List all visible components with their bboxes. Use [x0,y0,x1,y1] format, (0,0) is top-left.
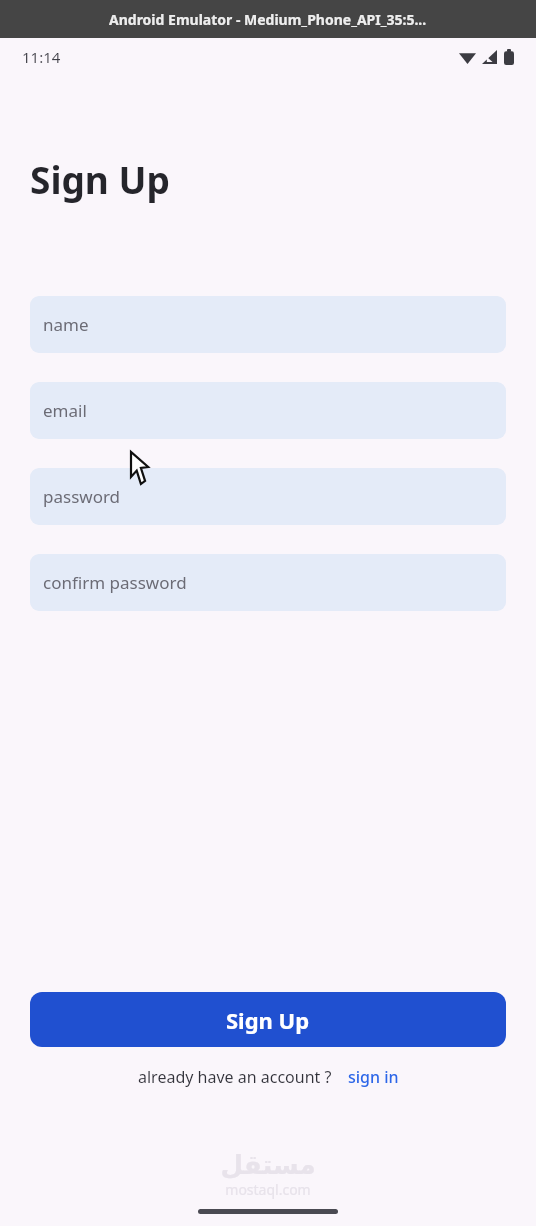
staticText: sign in [348,1066,399,1088]
staticText: already have an account ? [138,1066,332,1088]
button[interactable]: password [30,468,506,525]
button[interactable]: sign in [348,1066,399,1088]
staticText: Sign Up [226,1005,310,1035]
button[interactable]: email [30,382,506,439]
staticText: email [43,399,87,422]
staticText: Sign Up [30,154,170,204]
other: Pointer [131,452,153,484]
staticText: mostaql.com [225,1180,311,1199]
button[interactable]: name [30,296,506,353]
staticText: Android Emulator - Medium_Phone_API_35:5… [109,10,427,29]
staticText: password [43,485,121,508]
staticText: name [43,313,89,336]
staticText: مستقل [220,1150,316,1180]
button[interactable]: confirm password [30,554,506,611]
staticText: 11:14 [22,47,61,67]
staticText: confirm password [43,571,187,594]
button[interactable]: Sign Up [30,992,506,1047]
